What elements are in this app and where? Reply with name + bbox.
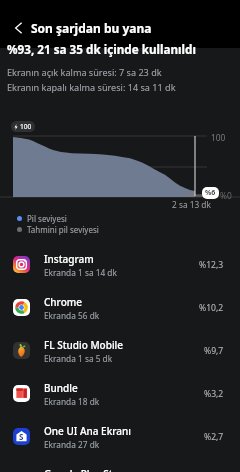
button[interactable]: Bundle [0, 372, 240, 415]
staticText: Son şarjdan bu yana [31, 20, 152, 36]
staticText: Ekranda 27 dk [44, 439, 100, 450]
staticText: S [19, 431, 24, 442]
staticText: Ekranda 56 dk [44, 310, 100, 321]
staticText: Ekranın kapalı kalma süresi: 14 sa 11 dk [7, 81, 176, 93]
staticText: Ekranda 18 dk [44, 396, 100, 407]
staticText: Ekranın açık kalma süresi: 7 sa 23 dk [7, 66, 162, 78]
staticText: 2 sa 13 dk [172, 199, 211, 210]
staticText: %3,2 [204, 388, 224, 400]
staticText: Google Play Store [44, 467, 129, 472]
staticText: Bundle [44, 381, 78, 395]
staticText: %9,7 [204, 345, 224, 357]
button[interactable]: S [0, 415, 240, 458]
staticText: %0 [220, 190, 232, 201]
staticText: Pil seviyesi [27, 213, 67, 224]
button[interactable]: Chrome [0, 286, 240, 329]
staticText: Tahmini pil seviyesi [27, 224, 99, 235]
staticText: One UI Ana Ekranı [44, 424, 131, 438]
button[interactable]: FL Studio Mobile [0, 329, 240, 372]
staticText: 100 [20, 122, 32, 131]
staticText: %6 [205, 188, 216, 198]
button[interactable]: Back [0, 16, 31, 40]
staticText: %93, 21 sa 35 dk içinde kullanıldı [7, 41, 196, 57]
staticText: Ekranda 1 sa 14 dk [44, 267, 117, 278]
staticText: %10,2 [199, 302, 224, 314]
staticText: 100 [211, 132, 226, 143]
staticText: FL Studio Mobile [44, 338, 124, 352]
staticText: %2,7 [204, 431, 224, 443]
button[interactable]: Instagram [0, 243, 240, 286]
staticText: Instagram [44, 252, 94, 266]
staticText: %12,3 [199, 259, 224, 271]
staticText: Ekranda 1 sa 5 dk [44, 353, 113, 364]
button[interactable]: Google Play Store [0, 458, 240, 472]
staticText: Chrome [44, 295, 82, 309]
